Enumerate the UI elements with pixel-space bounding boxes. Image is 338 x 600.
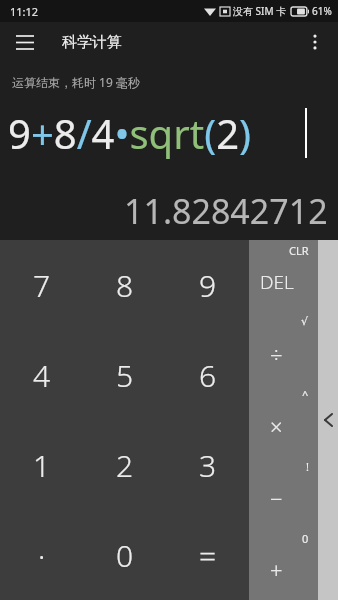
button[interactable]: 0 <box>83 510 166 600</box>
button[interactable]: ^ <box>249 384 318 456</box>
staticText: ! <box>306 459 309 474</box>
staticText: 8 <box>116 265 134 306</box>
staticText: CLR <box>289 243 309 258</box>
button[interactable]: 9 <box>166 240 249 330</box>
staticText: 2 <box>116 445 134 486</box>
staticText: 1 <box>33 445 51 486</box>
button[interactable]: 2 <box>83 420 166 510</box>
staticText: · <box>38 535 46 576</box>
staticText: 0 <box>116 535 134 576</box>
button[interactable]: 4 <box>0 330 83 420</box>
staticText: × <box>270 411 283 441</box>
staticText: 运算结束，耗时 19 毫秒 <box>12 74 140 90</box>
staticText: 7 <box>33 265 51 306</box>
staticText: 0 <box>302 531 309 546</box>
button[interactable]: Menu <box>8 25 42 59</box>
staticText: 3 <box>199 445 217 486</box>
staticText: 科学计算 <box>62 33 122 52</box>
button[interactable]: √ <box>249 312 318 384</box>
staticText: 5 <box>116 355 134 396</box>
button[interactable]: 5 <box>83 330 166 420</box>
staticText: − <box>270 483 283 513</box>
staticText: 4 <box>33 355 51 396</box>
staticText: = <box>199 535 217 576</box>
staticText: 9+8/4•sqrt(2) <box>8 106 252 160</box>
staticText: 9 <box>199 265 217 306</box>
staticText: 没有 SIM 卡 <box>233 4 287 18</box>
button[interactable]: 6 <box>166 330 249 420</box>
staticText: ÷ <box>270 339 283 369</box>
button[interactable]: 8 <box>83 240 166 330</box>
button[interactable]: ! <box>249 456 318 528</box>
button[interactable]: 3 <box>166 420 249 510</box>
staticText: 11:12 <box>10 4 39 19</box>
button[interactable]: Open panel <box>318 240 338 600</box>
button[interactable]: 0 <box>249 528 318 600</box>
button[interactable]: 7 <box>0 240 83 330</box>
staticText: √ <box>301 315 309 328</box>
staticText: 11.82842712 <box>124 188 328 234</box>
button[interactable]: 1 <box>0 420 83 510</box>
staticText: DEL <box>260 269 294 295</box>
staticText: + <box>270 555 283 585</box>
button[interactable]: = <box>166 510 249 600</box>
staticText: ^ <box>302 387 309 402</box>
button[interactable]: · <box>0 510 83 600</box>
staticText: 61% <box>312 4 332 18</box>
button[interactable]: CLR <box>249 240 318 312</box>
button[interactable]: More options <box>298 25 332 59</box>
staticText: 6 <box>199 355 217 396</box>
